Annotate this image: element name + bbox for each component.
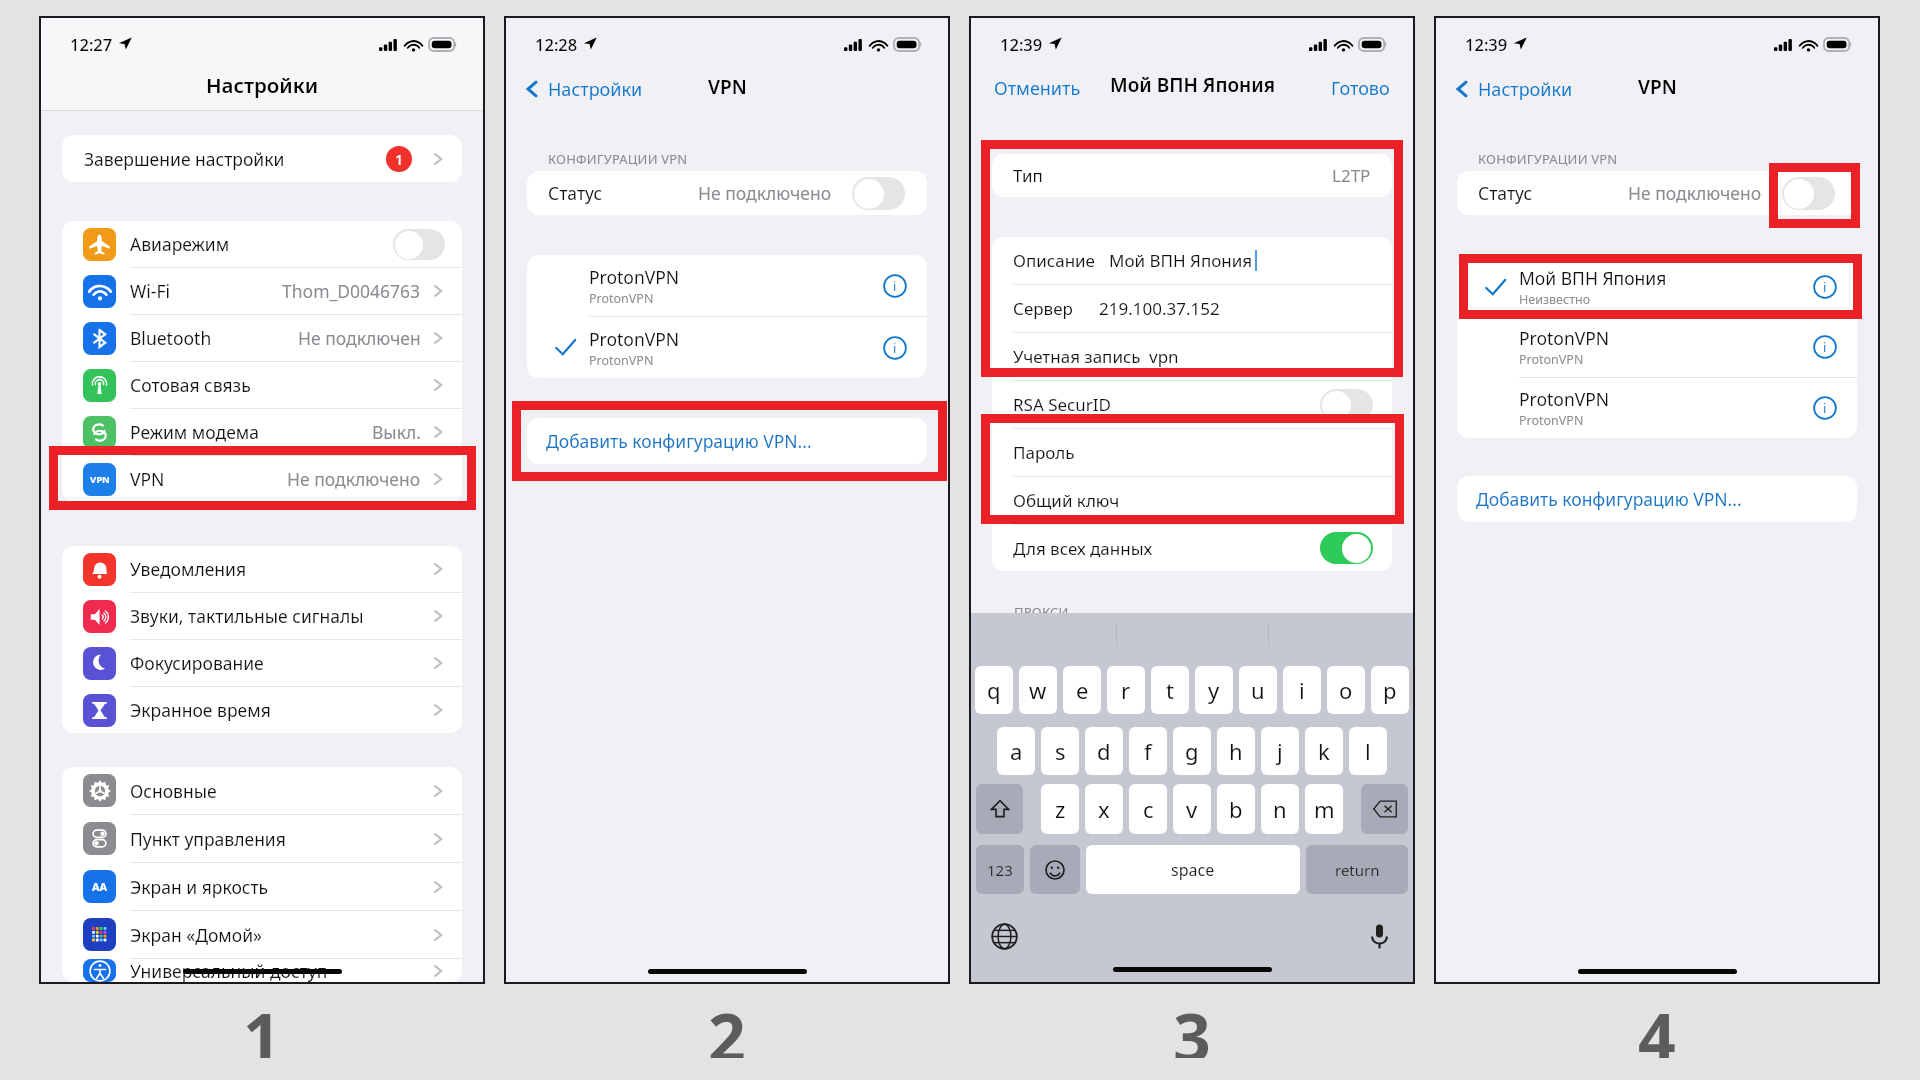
button[interactable]: Отменить xyxy=(971,68,1104,108)
button[interactable]: ProtonVPN xyxy=(527,255,927,316)
button[interactable]: Описание xyxy=(992,237,1392,284)
button[interactable]: Добавить конфигурацию VPN... xyxy=(527,418,927,464)
button[interactable]: j xyxy=(1261,727,1299,775)
button[interactable]: b xyxy=(1217,784,1255,834)
button[interactable]: Настройки xyxy=(1436,69,1583,109)
button[interactable]: Switch off xyxy=(1782,177,1835,210)
button[interactable]: Switch off xyxy=(1320,389,1373,421)
staticText: ПРОКСИ xyxy=(1014,603,1069,621)
button[interactable]: s xyxy=(1041,727,1079,775)
button[interactable]: c xyxy=(1129,784,1167,834)
button[interactable]: u xyxy=(1239,666,1277,714)
staticText: ProtonVPN xyxy=(1519,351,1584,368)
button[interactable]: f xyxy=(1129,727,1167,775)
button[interactable]: Экранное время xyxy=(62,687,462,733)
button[interactable]: g xyxy=(1173,727,1211,775)
button[interactable]: Экран «Домой» xyxy=(62,911,462,958)
button[interactable]: d xyxy=(1085,727,1123,775)
button[interactable]: Сервер xyxy=(992,285,1392,332)
button[interactable]: Режим модема xyxy=(62,409,462,455)
button[interactable]: q xyxy=(975,666,1013,714)
staticText: l xyxy=(1365,736,1371,766)
staticText: t xyxy=(1166,675,1174,705)
button[interactable]: RSA SecurID xyxy=(992,381,1392,428)
button[interactable]: emoji xyxy=(1030,845,1080,894)
staticText: Уведомления xyxy=(130,557,247,581)
staticText: Для всех данных xyxy=(1013,537,1153,560)
button[interactable]: Универсальный доступ xyxy=(62,959,462,982)
button[interactable]: Wi-Fi xyxy=(62,268,462,314)
button[interactable]: VPN xyxy=(62,456,462,502)
button[interactable]: o xyxy=(1327,666,1365,714)
button[interactable]: Добавить конфигурацию VPN... xyxy=(1457,476,1857,522)
button[interactable]: Switch on xyxy=(1320,532,1373,564)
button[interactable]: Фокусирование xyxy=(62,640,462,686)
button[interactable]: More info xyxy=(883,336,907,360)
button[interactable]: Уведомления xyxy=(62,546,462,592)
button[interactable]: z xyxy=(1041,784,1079,834)
button[interactable]: Основные xyxy=(62,767,462,814)
button[interactable]: return xyxy=(1306,845,1408,894)
button[interactable]: k xyxy=(1305,727,1343,775)
button[interactable]: Статус xyxy=(1457,171,1857,215)
button[interactable]: l xyxy=(1349,727,1387,775)
button[interactable]: Switch off xyxy=(852,177,905,210)
button[interactable]: space xyxy=(1086,845,1300,894)
button[interactable]: Звуки, тактильные сигналы xyxy=(62,593,462,639)
staticText: Пароль xyxy=(1013,441,1075,464)
staticText: КОНФИГУРАЦИИ VPN xyxy=(1478,150,1618,168)
button[interactable]: Тип xyxy=(992,154,1392,197)
button[interactable]: r xyxy=(1107,666,1145,714)
button[interactable]: Пароль xyxy=(992,429,1392,476)
button[interactable]: a xyxy=(997,727,1035,775)
staticText: 12:39 xyxy=(1465,33,1508,55)
button[interactable]: m xyxy=(1305,784,1343,834)
button[interactable]: ProtonVPN xyxy=(527,317,927,378)
button[interactable]: Мой ВПН Япония xyxy=(1457,257,1857,317)
button[interactable]: w xyxy=(1019,666,1057,714)
button[interactable]: Настройки xyxy=(506,69,653,109)
staticText: d xyxy=(1097,736,1111,766)
staticText: Основные xyxy=(130,779,217,803)
button[interactable]: i xyxy=(1283,666,1321,714)
button[interactable]: More info xyxy=(1813,275,1837,299)
staticText: u xyxy=(1251,675,1265,705)
button[interactable]: Для всех данных xyxy=(992,525,1392,571)
button[interactable]: h xyxy=(1217,727,1255,775)
button[interactable]: shift xyxy=(976,784,1023,834)
button[interactable]: t xyxy=(1151,666,1189,714)
button[interactable]: p xyxy=(1371,666,1409,714)
staticText: Режим модема xyxy=(130,420,259,444)
staticText: 12:27 xyxy=(70,33,113,55)
button[interactable]: Учетная запись xyxy=(992,333,1392,380)
button[interactable]: More info xyxy=(1813,396,1837,420)
button[interactable]: Завершение настройки xyxy=(62,135,462,182)
button[interactable]: y xyxy=(1195,666,1233,714)
button[interactable]: Пункт управления xyxy=(62,815,462,862)
button[interactable]: Switch off xyxy=(393,229,445,260)
button[interactable]: delete xyxy=(1361,784,1408,834)
button[interactable]: Change keyboard language xyxy=(991,923,1018,950)
button[interactable]: Авиарежим xyxy=(62,221,462,267)
staticText: Сервер xyxy=(1013,297,1073,320)
button[interactable]: Сотовая связь xyxy=(62,362,462,408)
button[interactable]: More info xyxy=(1813,335,1837,359)
button[interactable]: AA xyxy=(62,863,462,910)
button[interactable]: Готово xyxy=(1308,68,1413,108)
button[interactable]: Dictate xyxy=(1366,923,1393,950)
staticText: i xyxy=(1823,399,1827,417)
button[interactable]: ProtonVPN xyxy=(1457,317,1857,377)
button[interactable]: e xyxy=(1063,666,1101,714)
staticText: return xyxy=(1335,860,1380,880)
button[interactable]: 123 xyxy=(976,845,1024,894)
button[interactable]: Bluetooth xyxy=(62,315,462,361)
button[interactable]: ProtonVPN xyxy=(1457,378,1857,438)
button[interactable]: Общий ключ xyxy=(992,477,1392,524)
button[interactable]: Статус xyxy=(527,171,927,215)
staticText: Тип xyxy=(1013,164,1043,187)
button[interactable]: n xyxy=(1261,784,1299,834)
staticText: Добавить конфигурацию VPN... xyxy=(1476,487,1742,511)
button[interactable]: More info xyxy=(883,274,907,298)
button[interactable]: v xyxy=(1173,784,1211,834)
button[interactable]: x xyxy=(1085,784,1123,834)
